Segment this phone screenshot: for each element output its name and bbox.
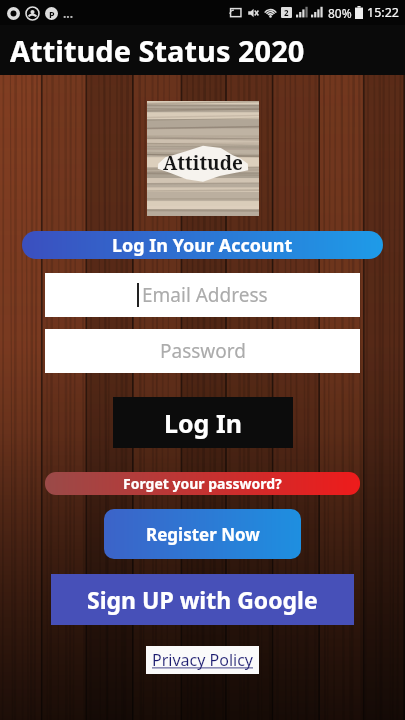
button[interactable]: Sign UP with Google — [51, 574, 354, 625]
button[interactable]: Log In Your Account — [22, 231, 383, 259]
staticText: Attitude — [163, 150, 243, 176]
staticText: Log In Your Account — [112, 233, 293, 258]
button[interactable]: Privacy Policy — [146, 646, 259, 674]
button[interactable]: Attitude app logo — [147, 101, 259, 213]
staticText: Attitude Status 2020 — [10, 31, 305, 70]
staticText: Forget your password? — [123, 474, 282, 493]
button[interactable]: Register Now — [104, 509, 301, 559]
staticText: 15:22 — [367, 4, 399, 21]
button[interactable]: Forget your password? — [45, 472, 360, 495]
staticText: 80% — [328, 5, 352, 21]
staticText: Register Now — [146, 523, 260, 546]
staticText: Log In — [164, 406, 242, 440]
button[interactable]: Password — [45, 329, 360, 373]
button[interactable]: Log In — [113, 397, 293, 448]
staticText: Password — [160, 338, 246, 364]
staticText: 2 — [284, 7, 289, 18]
staticText: P — [49, 8, 55, 20]
button[interactable]: Email Address — [45, 273, 360, 317]
staticText: Sign UP with Google — [87, 584, 318, 615]
staticText: ... — [63, 5, 74, 21]
staticText: Privacy Policy — [152, 649, 253, 671]
staticText: Email Address — [142, 282, 268, 308]
